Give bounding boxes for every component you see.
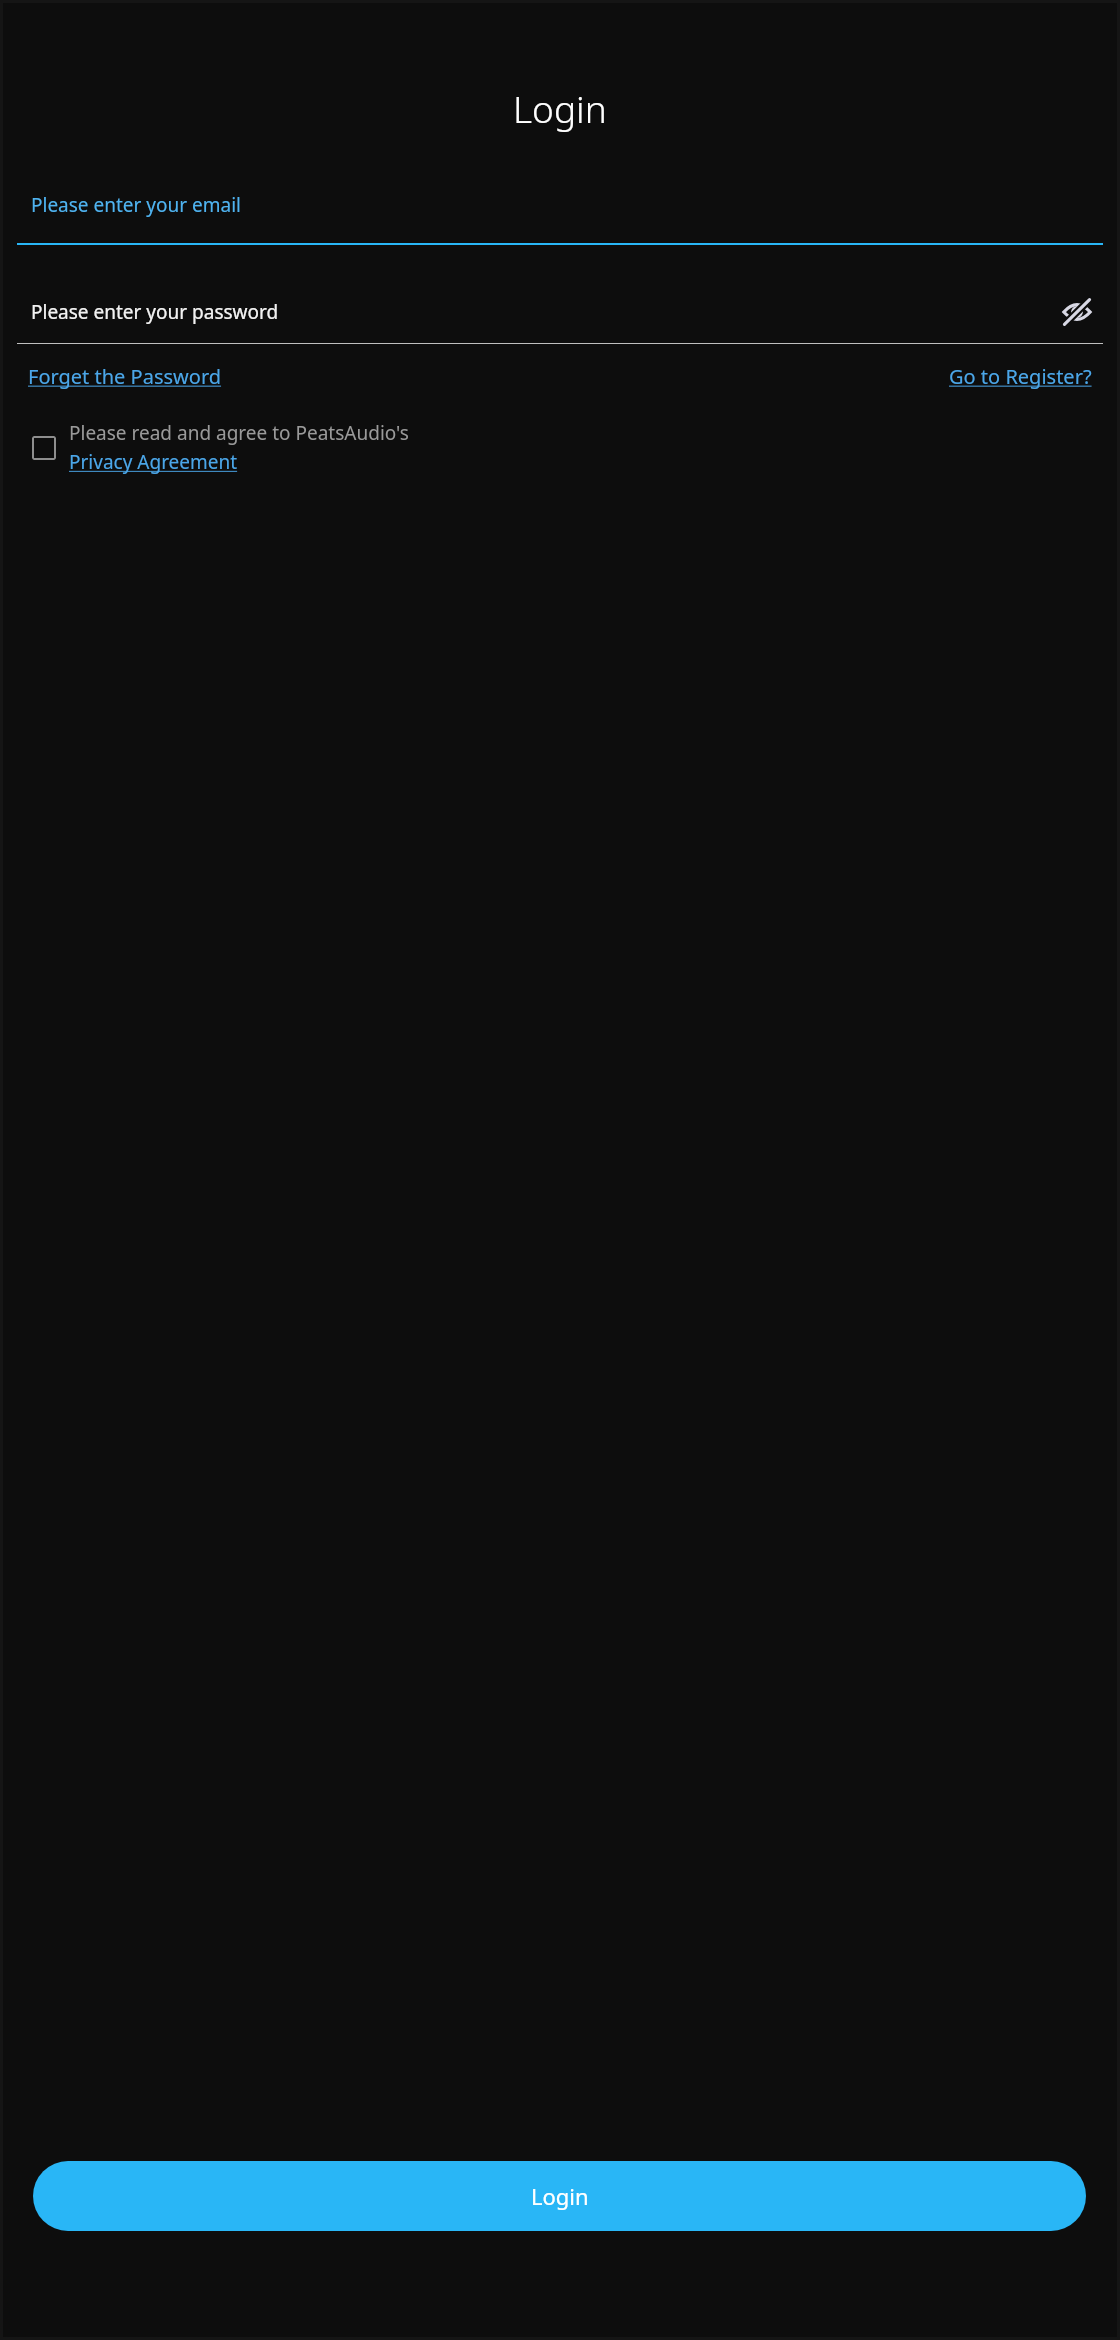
button[interactable]: Privacy Agreement — [69, 449, 238, 475]
button[interactable]: Please enter your password — [31, 295, 1094, 329]
staticText: Privacy Agreement — [69, 449, 238, 475]
button[interactable]: Show password — [1060, 295, 1094, 329]
staticText: Please enter your password — [31, 299, 279, 325]
staticText: Please enter your email — [31, 192, 242, 218]
staticText: Go to Register? — [949, 363, 1092, 390]
button[interactable]: Login — [33, 2161, 1086, 2231]
staticText: Login — [531, 2181, 589, 2211]
button[interactable]: Agree to Privacy Agreement — [29, 433, 59, 463]
button[interactable]: Forget the Password — [28, 363, 222, 390]
button[interactable]: Go to Register? — [949, 363, 1092, 390]
button[interactable]: Please enter your email — [3, 192, 1117, 245]
staticText: Please read and agree to PeatsAudio's — [69, 420, 409, 446]
staticText: Login — [513, 83, 607, 133]
staticText: Forget the Password — [28, 363, 222, 390]
